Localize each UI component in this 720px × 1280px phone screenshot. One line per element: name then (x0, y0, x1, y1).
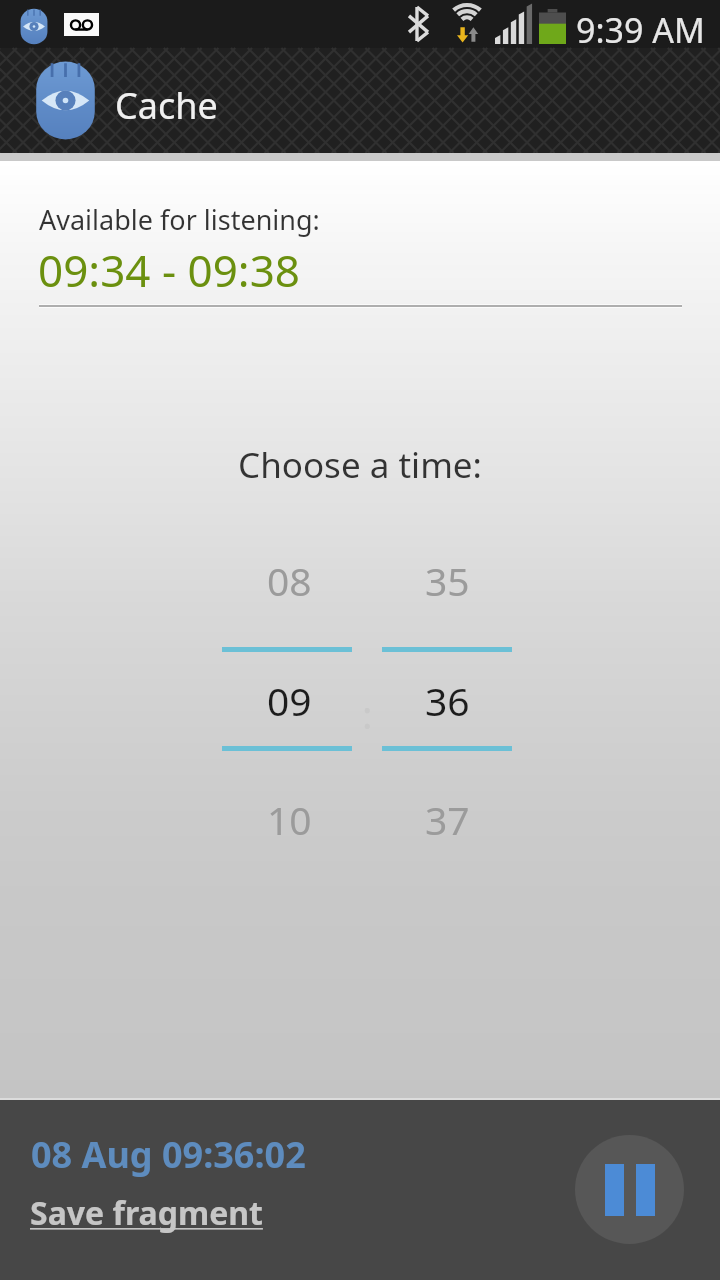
staticText: 35 (425, 554, 470, 607)
staticText: Save fragment (30, 1191, 263, 1235)
button[interactable]: 36 (404, 665, 490, 735)
staticText: 08 Aug 09:36:02 (31, 1130, 306, 1179)
staticText: 37 (425, 793, 470, 846)
staticText: 08 (267, 554, 312, 607)
button[interactable]: Save fragment (22, 1183, 275, 1243)
staticText: 9:39 AM (576, 7, 705, 53)
staticText: 36 (425, 674, 470, 727)
button[interactable]: 09 (246, 665, 332, 735)
button[interactable]: Cache (0, 48, 720, 153)
staticText: Cache (115, 81, 218, 130)
button[interactable]: 37 (404, 784, 490, 854)
button[interactable]: 35 (404, 545, 490, 615)
button[interactable]: 10 (246, 784, 332, 854)
staticText: 09:34 - 09:38 (38, 240, 300, 300)
button[interactable]: 08 (246, 545, 332, 615)
staticText: Choose a time: (0, 441, 720, 489)
staticText: 10 (267, 793, 312, 846)
staticText: 09 (267, 674, 312, 727)
staticText: Available for listening: (39, 201, 320, 238)
button[interactable]: Pause (575, 1135, 684, 1244)
